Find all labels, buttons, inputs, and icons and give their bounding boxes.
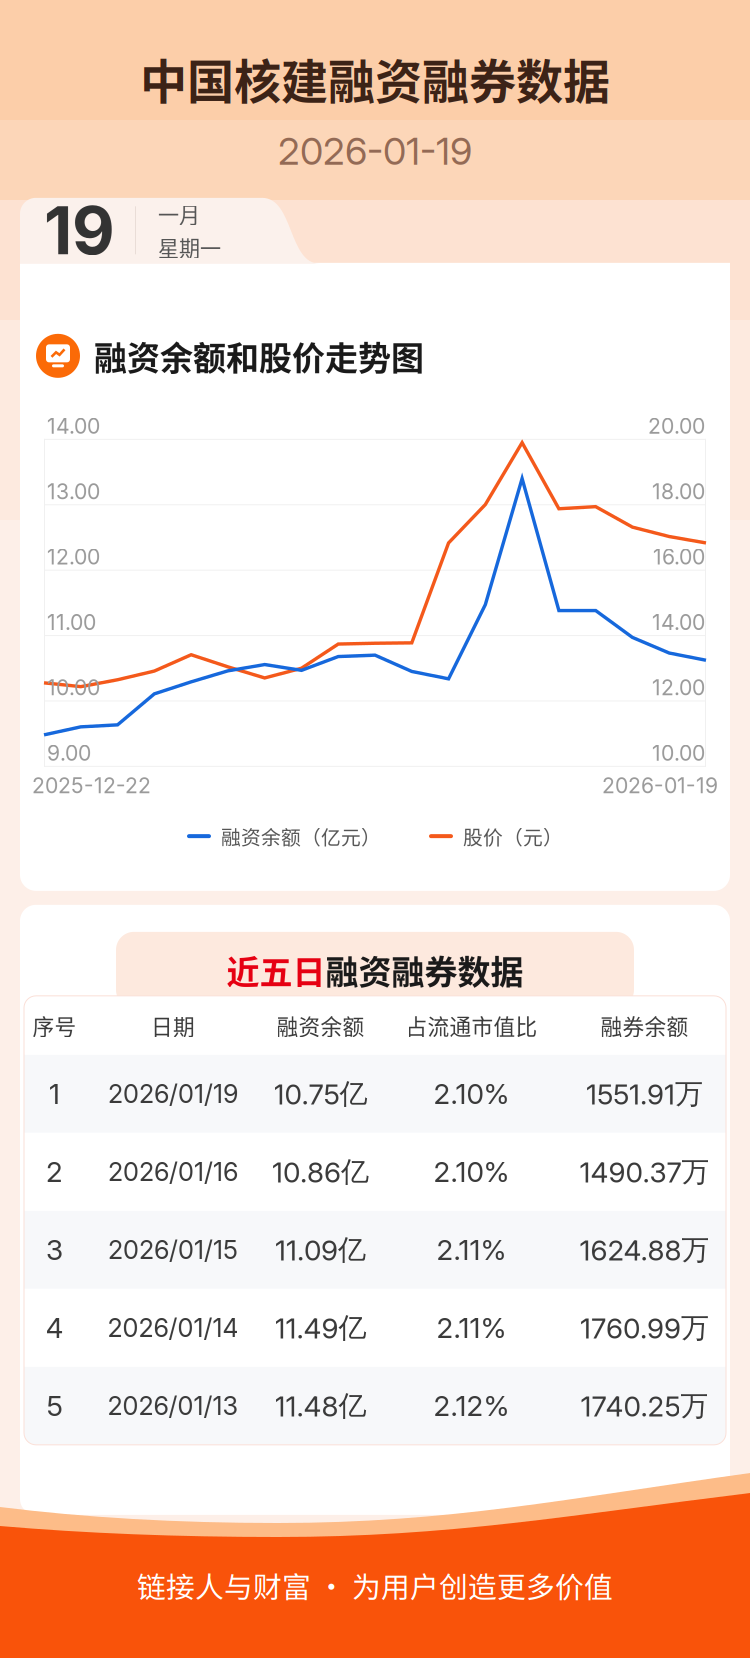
staticText: 2.11%: [436, 1233, 506, 1267]
staticText: 11.09亿: [275, 1232, 366, 1267]
staticText: 11.49亿: [274, 1310, 366, 1345]
staticText: 5: [46, 1389, 62, 1423]
staticText: 1551.91万: [586, 1076, 703, 1111]
staticText: 融资融券数据: [325, 946, 523, 994]
staticText: 链接人与财富 · 为用户创造更多价值: [137, 1564, 613, 1606]
staticText: 18.00: [652, 479, 705, 504]
staticText: 1624.88万: [579, 1232, 709, 1267]
staticText: 2026-01-19: [602, 773, 718, 798]
staticText: 日期: [151, 1010, 195, 1041]
staticText: 10.75亿: [273, 1076, 367, 1111]
staticText: 星期一: [158, 232, 221, 262]
staticText: 融资余额（亿元）: [221, 822, 381, 850]
staticText: 2.12%: [433, 1389, 509, 1423]
staticText: 3: [46, 1233, 63, 1267]
staticText: 股价（元）: [463, 822, 563, 850]
staticText: 2026-01-19: [278, 128, 472, 174]
staticText: 16.00: [653, 544, 705, 570]
staticText: 12.00: [652, 675, 705, 700]
staticText: 20.00: [648, 413, 705, 439]
staticText: 1490.37万: [579, 1154, 709, 1189]
staticText: 11.00: [47, 609, 96, 635]
staticText: 10.00: [47, 675, 100, 700]
staticText: 2025-12-22: [32, 773, 151, 798]
staticText: 2: [46, 1155, 63, 1189]
staticText: 13.00: [47, 479, 100, 504]
staticText: 融券余额: [600, 1010, 688, 1041]
staticText: 12.00: [47, 544, 100, 570]
staticText: 1740.25万: [580, 1388, 708, 1423]
staticText: 中国核建融资融券数据: [140, 44, 610, 112]
staticText: 近五日: [226, 946, 325, 994]
staticText: 融资余额和股价走势图: [94, 332, 424, 380]
staticText: 10.00: [652, 740, 705, 766]
staticText: 2.10%: [433, 1077, 509, 1111]
staticText: 融资余额: [276, 1010, 364, 1041]
staticText: 9.00: [47, 740, 91, 766]
staticText: 10.86亿: [272, 1154, 369, 1189]
staticText: 1760.99万: [580, 1310, 709, 1345]
staticText: 19: [44, 191, 115, 270]
staticText: 2.11%: [436, 1311, 506, 1345]
staticText: 4: [45, 1311, 63, 1345]
staticText: 2.10%: [433, 1155, 509, 1189]
staticText: 14.00: [652, 609, 705, 635]
staticText: 11.48亿: [274, 1388, 366, 1423]
staticText: 序号: [32, 1010, 76, 1041]
staticText: 2026/01/19: [108, 1078, 238, 1109]
staticText: 2026/01/15: [108, 1234, 238, 1265]
staticText: 2026/01/14: [107, 1312, 238, 1343]
staticText: 一月: [158, 198, 200, 229]
staticText: 占流通市值比: [405, 1010, 537, 1041]
staticText: 2026/01/16: [108, 1156, 238, 1187]
staticText: 1: [49, 1077, 60, 1111]
staticText: 14.00: [47, 413, 100, 439]
staticText: 2026/01/13: [107, 1390, 238, 1421]
